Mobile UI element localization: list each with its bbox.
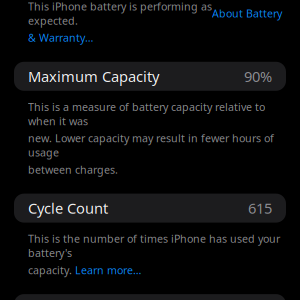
staticText: This iPhone battery is performing as exp… (28, 0, 212, 28)
staticText: About Battery (212, 6, 282, 21)
staticText: Cycle Count (28, 198, 108, 218)
staticText: & Warranty… (28, 31, 93, 45)
staticText: Learn more… (75, 263, 141, 277)
staticText: capacity. (28, 263, 75, 277)
staticText: between charges. (28, 162, 118, 177)
staticText: new. Lower capacity may result in fewer … (28, 131, 274, 159)
staticText: 615 (248, 198, 272, 218)
button[interactable]: Cycle Count (0, 194, 300, 223)
button[interactable]: Maximum Capacity (0, 62, 300, 91)
staticText: 90% (244, 66, 272, 86)
staticText: This is the number of times iPhone has u… (28, 232, 280, 260)
staticText: This is a measure of battery capacity re… (28, 100, 265, 128)
staticText: Maximum Capacity (28, 66, 159, 86)
